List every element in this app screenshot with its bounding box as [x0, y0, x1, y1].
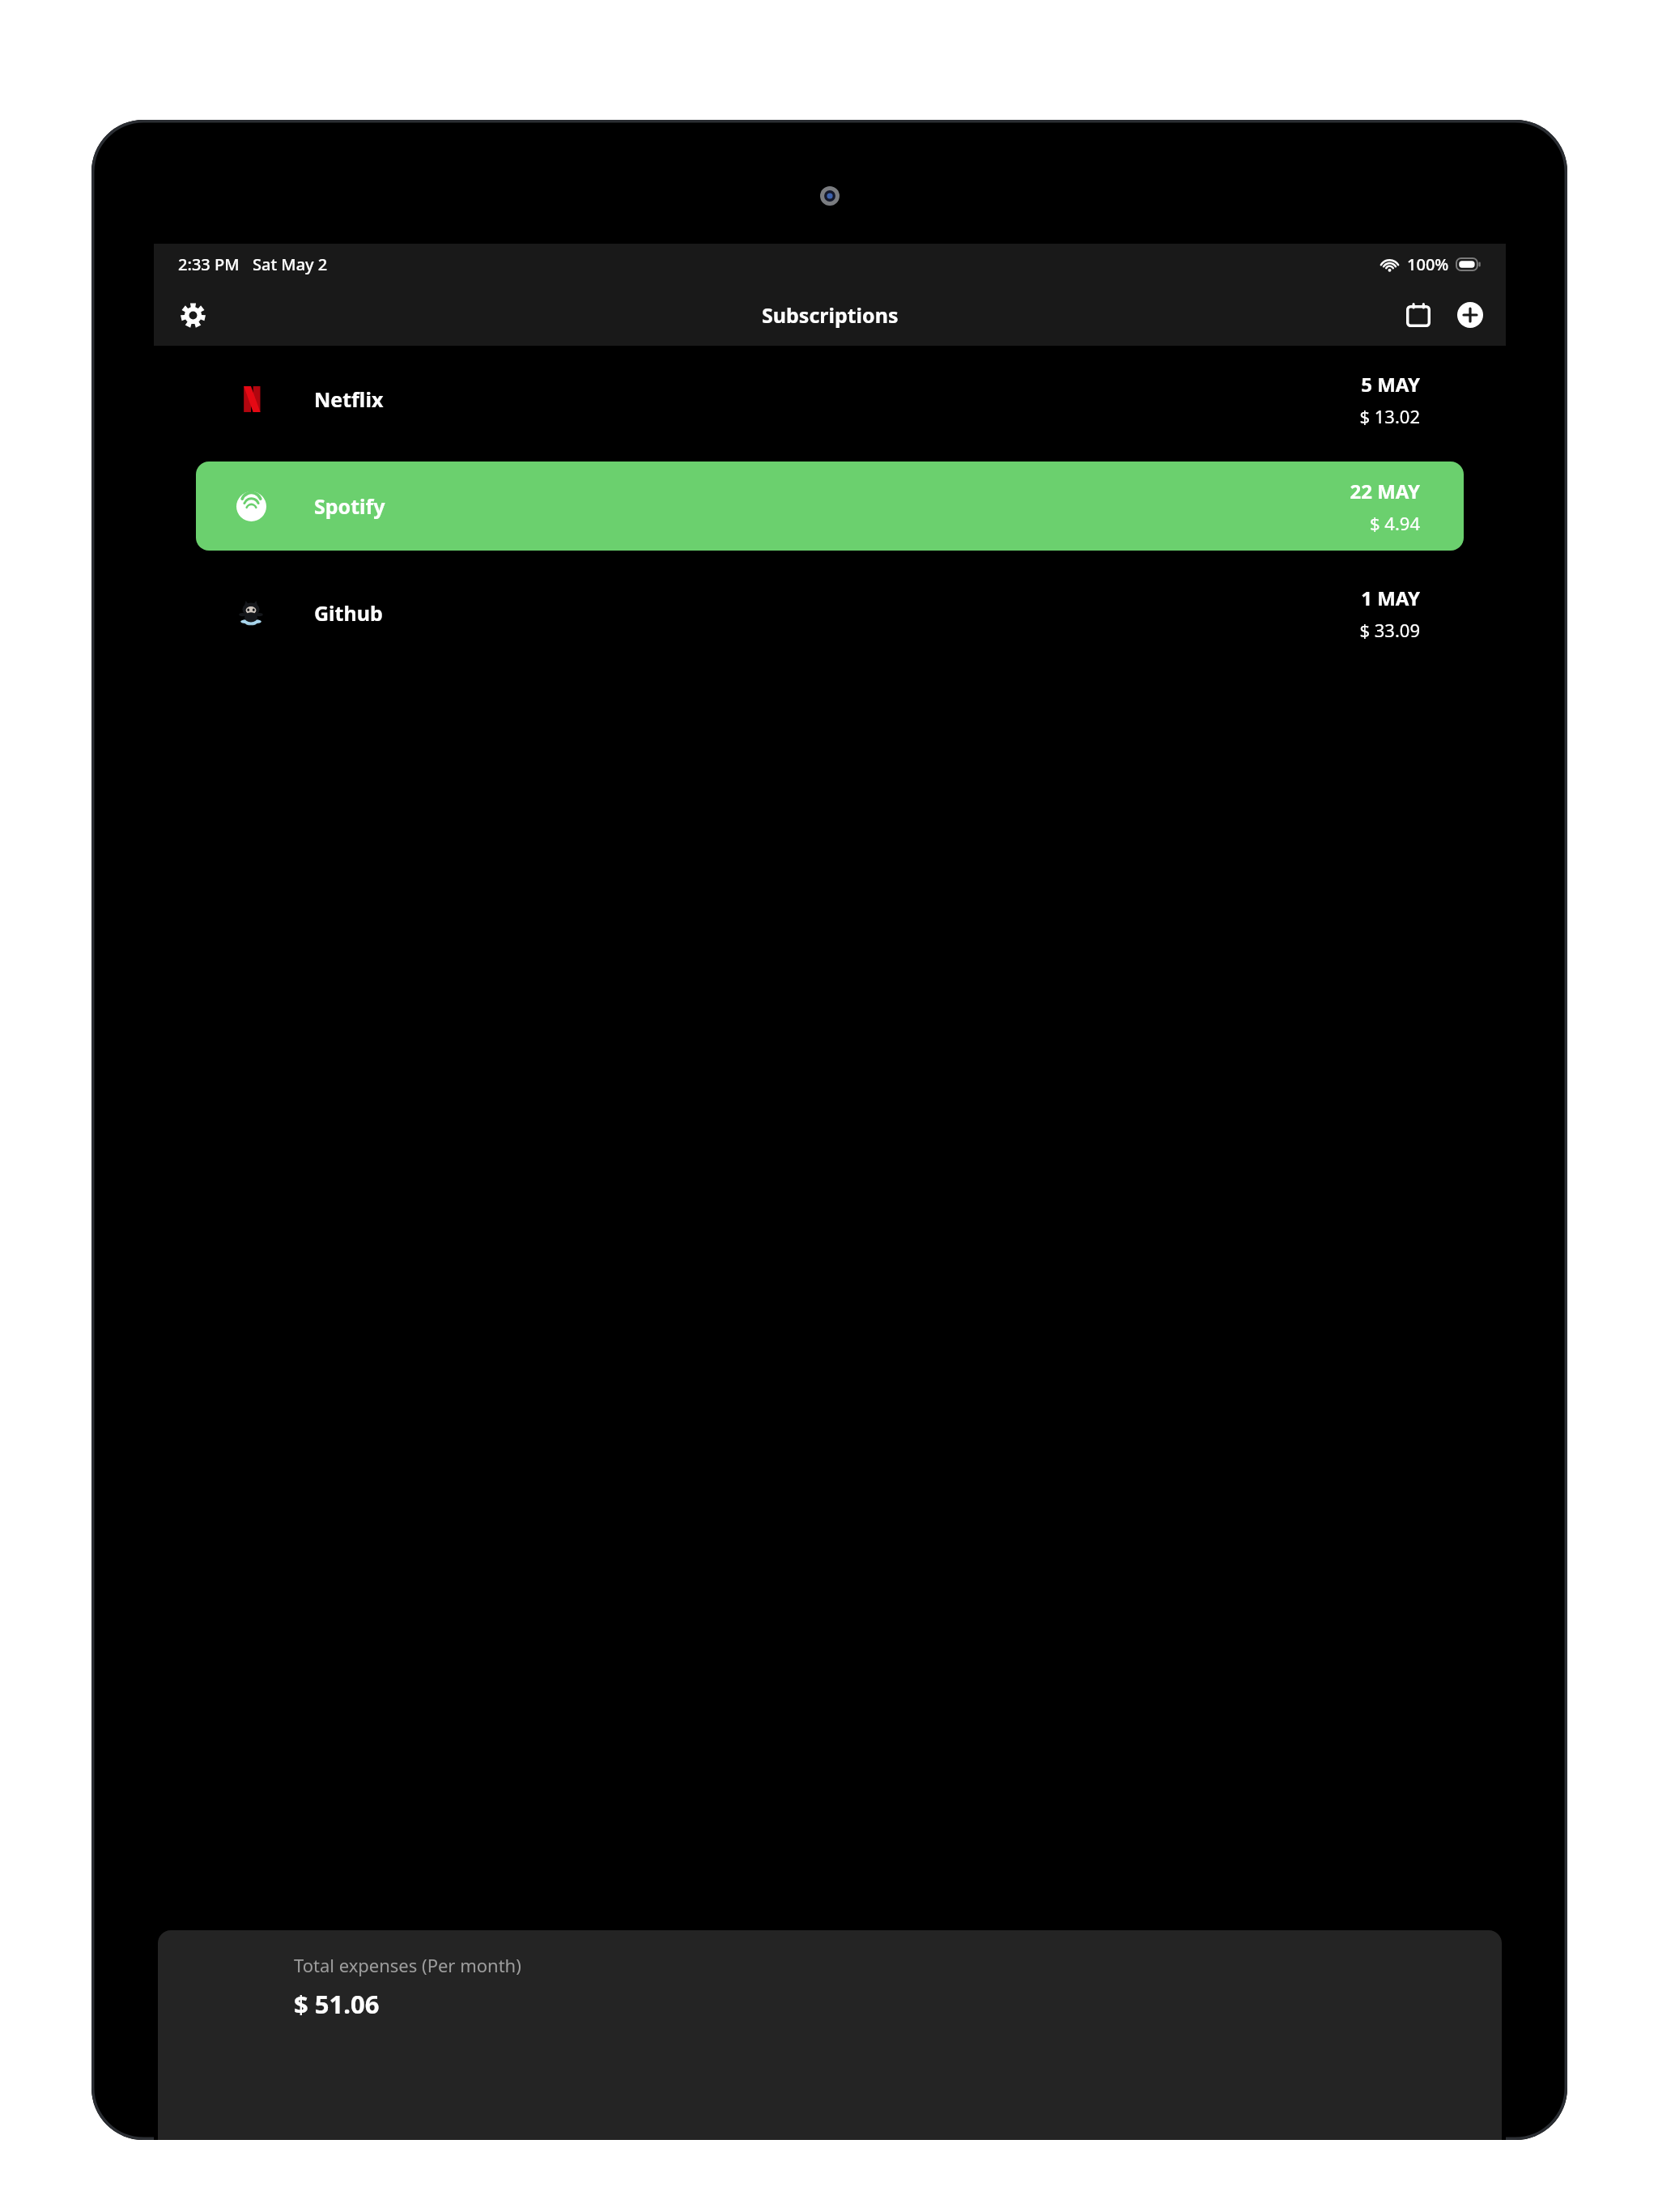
staticText: 2:33 PM: [178, 253, 240, 275]
button[interactable]: Calendar: [1392, 289, 1444, 341]
staticText: 100%: [1407, 253, 1449, 275]
staticText: $ 51.06: [294, 1987, 380, 2021]
staticText: 5 MAY: [1361, 371, 1420, 398]
button[interactable]: Total expenses (Per month): [158, 1930, 1502, 2140]
button[interactable]: Netflix: [196, 355, 1464, 444]
button[interactable]: Spotify: [196, 462, 1464, 551]
staticText: Total expenses (Per month): [294, 1953, 521, 1977]
staticText: Spotify: [314, 492, 385, 520]
staticText: $ 33.09: [1359, 618, 1420, 642]
staticText: $ 4.94: [1370, 511, 1420, 535]
staticText: 22 MAY: [1350, 478, 1420, 504]
staticText: Subscriptions: [762, 301, 899, 329]
button[interactable]: Settings: [167, 289, 219, 341]
staticText: $ 13.02: [1359, 404, 1420, 428]
staticText: Sat May 2: [253, 253, 328, 275]
button[interactable]: Add subscription: [1444, 289, 1496, 341]
button[interactable]: Github: [196, 568, 1464, 657]
staticText: 1 MAY: [1361, 585, 1420, 611]
staticText: Netflix: [314, 385, 384, 413]
staticText: Github: [314, 599, 383, 627]
